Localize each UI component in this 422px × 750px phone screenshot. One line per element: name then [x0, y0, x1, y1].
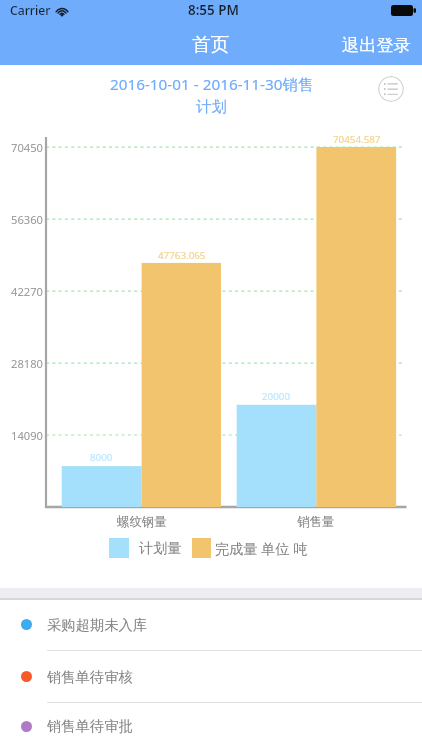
staticText: 销售量 [297, 514, 335, 530]
staticText: 47763.065 [158, 249, 206, 262]
button[interactable]: 首页 [178, 28, 244, 61]
button[interactable]: 采购超期未入库 [0, 599, 422, 650]
staticText: 28180 [11, 356, 43, 371]
staticText: 8:55 PM [188, 1, 239, 19]
button[interactable]: 退出登录 [328, 28, 422, 62]
staticText: 70454.587 [333, 133, 381, 146]
button[interactable]: List menu [378, 76, 404, 102]
staticText: Carrier [10, 2, 51, 19]
staticText: 2016-10-01 - 2016-11-30销售计划 [104, 74, 319, 117]
staticText: 70450 [11, 140, 43, 155]
button[interactable]: 销售单待审批 [0, 703, 422, 749]
staticText: 计划量 [139, 539, 182, 557]
staticText: 完成量 单位 吨 [215, 539, 308, 558]
staticText: 42270 [11, 284, 43, 299]
staticText: 螺纹钢量 [117, 514, 167, 530]
staticText: 销售单待审批 [47, 717, 133, 735]
staticText: 56360 [11, 212, 43, 227]
staticText: 14090 [11, 428, 43, 443]
staticText: 首页 [192, 33, 230, 56]
staticText: 退出登录 [342, 34, 411, 56]
staticText: 销售单待审核 [47, 668, 133, 686]
staticText: 采购超期未入库 [47, 616, 148, 634]
button[interactable]: 销售单待审核 [0, 651, 422, 702]
staticText: 8000 [90, 451, 113, 464]
staticText: 20000 [262, 390, 291, 403]
